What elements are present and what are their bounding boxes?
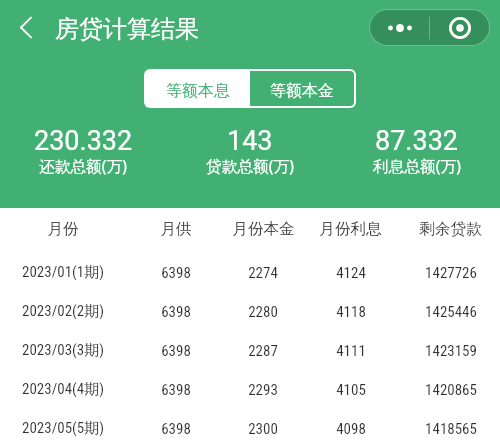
staticText: 2023/04(4期) (22, 380, 104, 399)
staticText: 6398 (161, 381, 191, 399)
staticText: 1418565 (425, 420, 477, 438)
staticText: 6398 (161, 264, 191, 282)
button[interactable]: 2023/03(3期) (0, 331, 500, 370)
staticText: 6398 (161, 303, 191, 321)
staticText: 2274 (248, 264, 278, 282)
staticText: 月份利息 (319, 219, 382, 239)
staticText: 房贷计算结果 (55, 14, 199, 44)
staticText: 月份本金 (232, 219, 295, 239)
staticText: 等额本息 (166, 81, 230, 101)
staticText: 4105 (336, 381, 366, 399)
button[interactable]: Back (9, 10, 43, 44)
staticText: 230.332 (34, 125, 133, 157)
button[interactable]: 等额本息 (146, 71, 250, 106)
button[interactable]: 2023/01(1期) (0, 253, 500, 292)
staticText: 2023/02(2期) (22, 302, 104, 321)
staticText: 利息总额(万) (373, 155, 461, 176)
staticText: 4118 (336, 303, 366, 321)
staticText: 4124 (336, 264, 366, 282)
button[interactable]: 等额本金 (250, 71, 354, 106)
staticText: 2293 (248, 381, 278, 399)
staticText: 1420865 (425, 381, 477, 399)
button[interactable]: More options (370, 10, 429, 45)
staticText: 2023/05(5期) (22, 419, 104, 438)
staticText: 6398 (161, 342, 191, 360)
staticText: 4111 (336, 342, 366, 360)
button[interactable]: Close mini program (430, 10, 489, 45)
staticText: 2023/01(1期) (22, 263, 104, 282)
staticText: 2023/03(3期) (22, 341, 104, 360)
staticText: 剩余贷款 (419, 219, 482, 239)
staticText: 月供 (160, 219, 192, 239)
button[interactable]: 2023/04(4期) (0, 370, 500, 409)
staticText: 2280 (248, 303, 278, 321)
button[interactable]: 2023/02(2期) (0, 292, 500, 331)
staticText: 2300 (248, 420, 278, 438)
staticText: 1427726 (425, 264, 477, 282)
staticText: 贷款总额(万) (206, 155, 294, 176)
button[interactable]: 2023/05(5期) (0, 409, 500, 442)
staticText: 6398 (161, 420, 191, 438)
staticText: 87.332 (375, 125, 458, 157)
staticText: 月份 (47, 219, 79, 239)
staticText: 4098 (336, 420, 366, 438)
staticText: 2287 (248, 342, 278, 360)
staticText: 1423159 (425, 342, 477, 360)
staticText: 还款总额(万) (39, 155, 127, 176)
staticText: 1425446 (425, 303, 477, 321)
staticText: 143 (227, 125, 273, 157)
staticText: 等额本金 (270, 81, 334, 101)
button[interactable]: 月份 (0, 208, 500, 253)
